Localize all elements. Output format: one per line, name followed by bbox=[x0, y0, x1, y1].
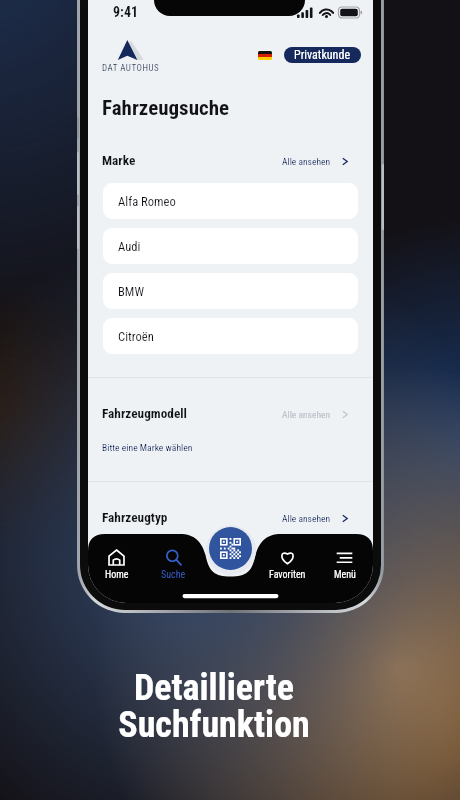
staticText: Alfa Romeo bbox=[118, 194, 176, 209]
button[interactable]: Alle ansehen bbox=[272, 511, 359, 526]
staticText: Home bbox=[105, 569, 129, 581]
button[interactable]: Alle ansehen bbox=[272, 154, 359, 169]
staticText: 9:41 bbox=[113, 4, 139, 20]
button[interactable]: QR-Code scannen bbox=[209, 527, 252, 570]
staticText: Fahrzeugsuche bbox=[102, 96, 230, 121]
staticText: Alle ansehen bbox=[282, 156, 331, 167]
button[interactable]: BMW bbox=[103, 273, 358, 309]
button[interactable]: Sprache Deutsch bbox=[258, 51, 272, 60]
staticText: DAT AUTOHUS bbox=[102, 63, 160, 74]
staticText: Privatkunde bbox=[294, 48, 351, 62]
staticText: Audi bbox=[118, 239, 141, 254]
button[interactable]: Suche bbox=[145, 549, 202, 581]
button[interactable]: Audi bbox=[103, 228, 358, 264]
button[interactable]: Menü bbox=[316, 549, 373, 581]
staticText: Citroën bbox=[118, 329, 154, 344]
staticText: Alle ansehen bbox=[282, 513, 331, 524]
button[interactable]: Alle ansehen bbox=[272, 407, 359, 422]
staticText: Alle ansehen bbox=[282, 409, 331, 420]
staticText: Marke bbox=[102, 153, 136, 169]
staticText: Fahrzeugmodell bbox=[102, 406, 187, 422]
button[interactable]: Citroën bbox=[103, 318, 358, 354]
button[interactable]: Home bbox=[88, 549, 145, 581]
button[interactable]: DAT AUTOHUS bbox=[102, 40, 160, 74]
staticText: Suche bbox=[161, 569, 186, 581]
button[interactable]: Privatkunde bbox=[284, 47, 361, 63]
staticText: Menü bbox=[334, 569, 356, 581]
staticText: Detaillierte Suchfunktion bbox=[0, 667, 444, 746]
staticText: Bitte eine Marke wählen bbox=[102, 442, 193, 453]
staticText: BMW bbox=[118, 284, 144, 299]
button[interactable]: Favoriten bbox=[259, 549, 316, 581]
staticText: Favoriten bbox=[269, 569, 306, 581]
button[interactable]: Alfa Romeo bbox=[103, 183, 358, 219]
staticText: Fahrzeugtyp bbox=[102, 510, 168, 526]
